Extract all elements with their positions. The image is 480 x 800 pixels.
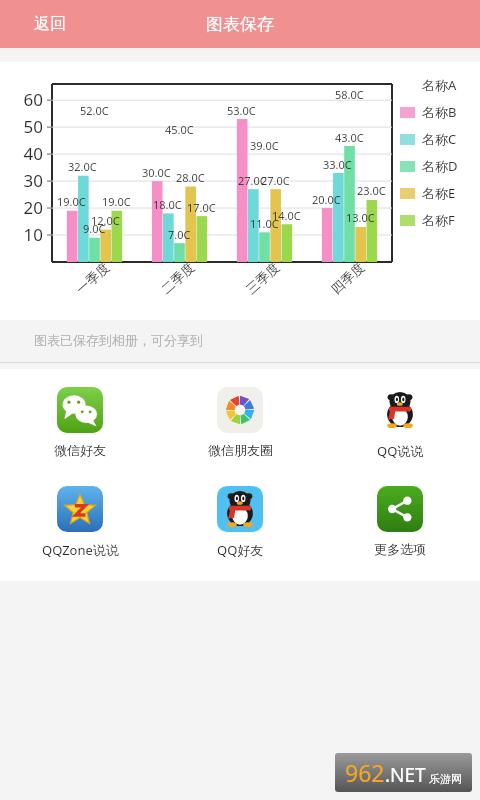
staticText: 30 — [23, 169, 43, 192]
staticText: 20 — [23, 196, 43, 219]
staticText: 27.0C — [261, 173, 290, 188]
staticText: 58.0C — [335, 87, 364, 102]
staticText: 二季度 — [158, 259, 197, 297]
staticText: 43.0C — [335, 130, 364, 145]
staticText: 17.0C — [187, 200, 216, 215]
staticText: 10 — [23, 223, 43, 246]
other: 分享到QQ说说 — [377, 387, 423, 433]
staticText: 20.0C — [312, 192, 341, 207]
staticText: 53.0C — [227, 103, 256, 118]
staticText: 9.0C — [83, 221, 106, 236]
staticText: 19.0C — [102, 194, 131, 209]
staticText: 39.0C — [250, 138, 279, 153]
staticText: 27.0C — [238, 173, 267, 188]
button[interactable]: 分享到QQ好友 — [160, 484, 320, 561]
staticText: 名称E — [422, 184, 456, 202]
staticText: 名称D — [422, 157, 458, 175]
staticText: .NET — [385, 762, 426, 788]
button[interactable]: 图表保存 — [198, 8, 282, 41]
staticText: 名称C — [422, 130, 457, 148]
button[interactable]: 返回 — [26, 8, 74, 40]
staticText: 52.0C — [80, 103, 109, 118]
staticText: 30.0C — [142, 165, 171, 180]
button[interactable]: 分享到QQ空间说说 — [0, 484, 160, 561]
staticText: 名称F — [422, 211, 455, 229]
staticText: 返回 — [34, 14, 66, 34]
staticText: 图表已保存到相册，可分享到 — [34, 332, 203, 348]
staticText: 14.0C — [272, 208, 301, 223]
staticText: 962 — [345, 757, 385, 788]
staticText: 45.0C — [165, 122, 194, 137]
other: 分享到QQ空间说说 — [57, 486, 103, 532]
staticText: 19.0C — [57, 194, 86, 209]
staticText: QQ好友 — [217, 541, 264, 559]
staticText: 图表保存 — [206, 14, 274, 35]
staticText: 12.0C — [91, 213, 120, 228]
staticText: 60 — [23, 88, 43, 111]
button[interactable]: 分享到微信朋友圈 — [160, 385, 320, 460]
button[interactable]: 分享到QQ说说 — [320, 385, 480, 462]
staticText: 四季度 — [328, 259, 367, 297]
staticText: 7.0C — [168, 227, 191, 242]
staticText: 更多选项 — [374, 541, 426, 557]
staticText: 微信朋友圈 — [208, 442, 273, 458]
staticText: 一季度 — [73, 259, 112, 297]
staticText: 名称B — [422, 103, 457, 121]
button[interactable]: 更多分享选项 — [320, 484, 480, 559]
staticText: 23.0C — [357, 183, 386, 198]
staticText: 微信好友 — [54, 442, 106, 458]
other: 分享到QQ好友 — [217, 486, 263, 532]
staticText: 三季度 — [243, 259, 282, 297]
other: 分享到微信朋友圈 — [217, 387, 263, 433]
staticText: QQ说说 — [377, 442, 424, 460]
other: 更多分享选项 — [377, 486, 423, 532]
staticText: 40 — [23, 142, 43, 165]
staticText: 32.0C — [68, 159, 97, 174]
staticText: QQZone说说 — [42, 541, 119, 559]
staticText: 乐游网 — [429, 772, 462, 786]
staticText: 名称A — [422, 76, 457, 94]
staticText: 50 — [23, 115, 43, 138]
staticText: 11.0C — [250, 216, 279, 231]
other: 分享到微信好友 — [57, 387, 103, 433]
staticText: 28.0C — [176, 170, 205, 185]
button[interactable]: 分享到微信好友 — [0, 385, 160, 460]
staticText: 18.0C — [153, 197, 182, 212]
staticText: 13.0C — [346, 210, 375, 225]
staticText: 33.0C — [323, 157, 352, 172]
